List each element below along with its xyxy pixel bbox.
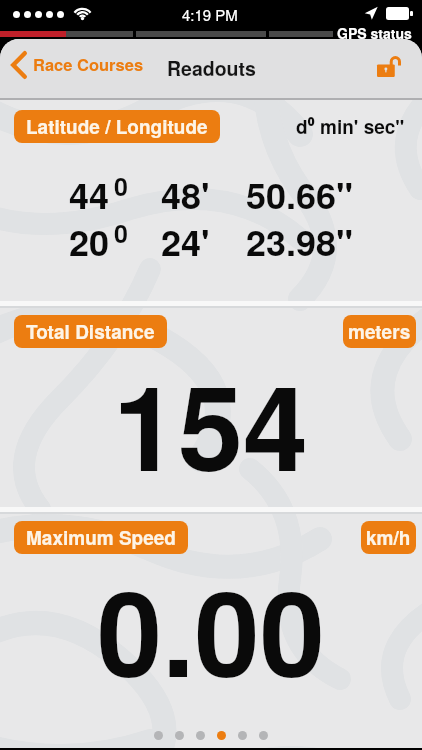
staticText: 4:19 PM	[182, 4, 238, 25]
button[interactable]	[217, 731, 226, 740]
button[interactable]: Unlock	[369, 48, 409, 86]
staticText: 20	[69, 215, 110, 267]
button[interactable]: Race Courses	[8, 47, 150, 83]
staticText: 0.00	[97, 545, 325, 713]
button[interactable]: Total Distance	[14, 315, 167, 348]
button[interactable]: Latitude / Longitude	[14, 110, 220, 143]
button[interactable]	[154, 731, 163, 740]
staticText: 48'	[161, 168, 210, 220]
staticText: meters	[348, 318, 411, 345]
staticText: Total Distance	[26, 318, 155, 345]
button[interactable]	[238, 731, 247, 740]
staticText: 50.66"	[246, 168, 354, 220]
staticText: Readouts	[167, 54, 256, 82]
staticText: 0	[114, 168, 128, 204]
staticText: 154	[113, 339, 309, 507]
staticText: Race Courses	[33, 52, 144, 76]
staticText: d⁰ min' sec"	[296, 113, 405, 140]
button[interactable]: km/h	[361, 521, 416, 554]
staticText: 24'	[161, 215, 210, 267]
staticText: km/h	[366, 524, 411, 551]
staticText: 44	[69, 168, 110, 220]
staticText: Latitude / Longitude	[26, 113, 208, 140]
button[interactable]	[175, 731, 184, 740]
staticText: 23.98"	[246, 215, 354, 267]
button[interactable]	[196, 731, 205, 740]
staticText: GPS status	[337, 23, 412, 43]
staticText: Maximum Speed	[26, 524, 176, 551]
staticText: 0	[114, 215, 128, 251]
button[interactable]: Maximum Speed	[14, 521, 188, 554]
button[interactable]	[259, 731, 268, 740]
button[interactable]: meters	[343, 315, 416, 348]
